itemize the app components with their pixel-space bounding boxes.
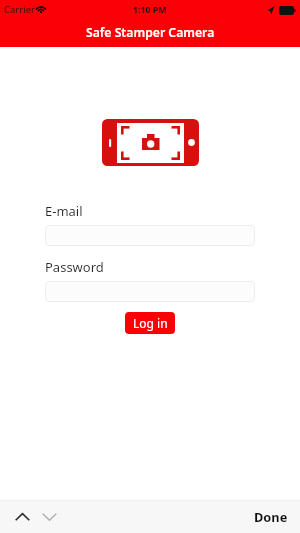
button[interactable]: Log in <box>125 312 175 334</box>
button[interactable]: Next field <box>36 502 62 531</box>
button[interactable]: Previous field <box>9 502 35 531</box>
staticText: Safe Stamper Camera <box>86 24 215 41</box>
staticText: 1:10 PM <box>133 4 167 16</box>
button[interactable]: Done <box>250 504 292 529</box>
button[interactable] <box>45 281 255 302</box>
staticText: E-mail <box>45 202 83 220</box>
staticText: Carrier <box>4 3 35 16</box>
staticText: Password <box>45 258 104 276</box>
staticText: Done <box>254 508 288 525</box>
button[interactable] <box>45 225 255 246</box>
staticText: Log in <box>133 315 168 331</box>
